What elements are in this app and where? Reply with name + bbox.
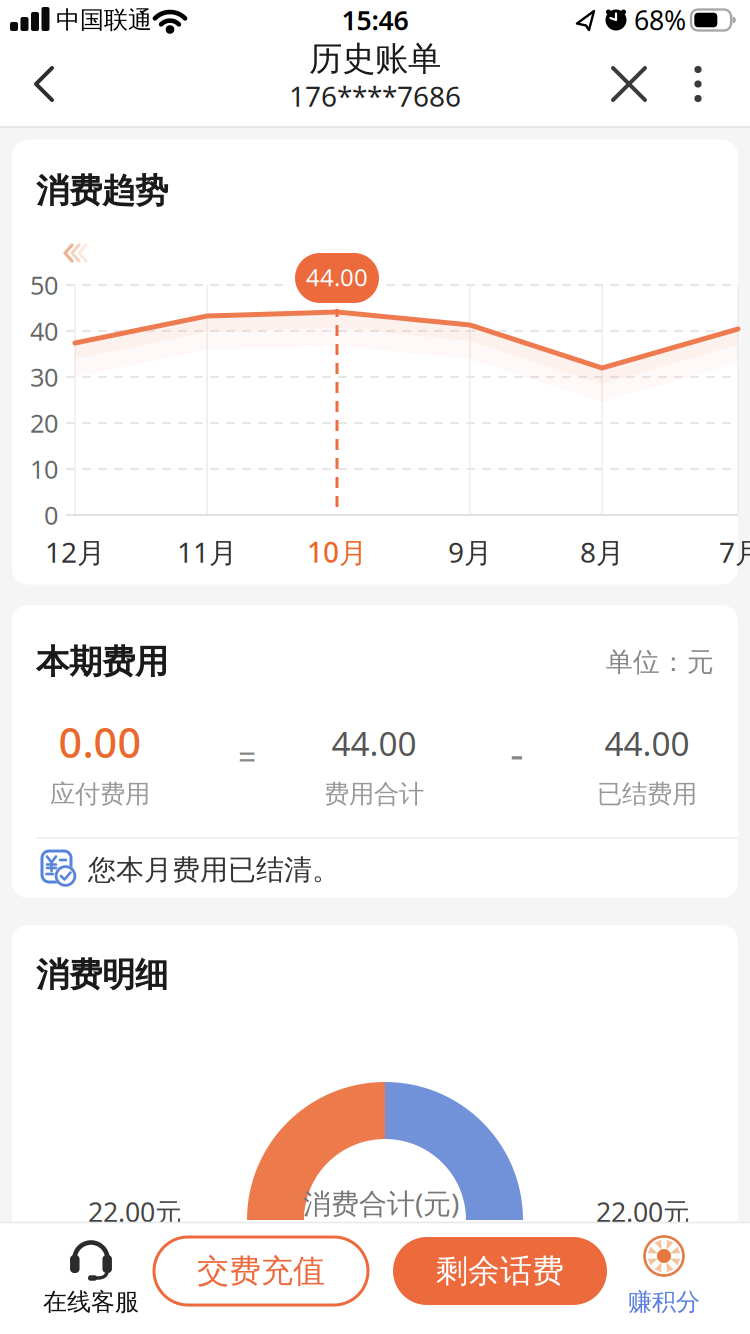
staticText: 9月 xyxy=(448,533,492,571)
staticText: 消费明细 xyxy=(36,954,168,995)
staticText: 剩余话费 xyxy=(436,1251,564,1291)
button[interactable]: 剩余话费 xyxy=(393,1237,607,1305)
staticText: 44.00 xyxy=(604,721,689,765)
staticText: 176****7686 xyxy=(289,77,461,115)
staticText: 赚积分 xyxy=(628,1287,700,1317)
staticText: 您本月费用已结清。 xyxy=(88,853,340,887)
staticText: 68% xyxy=(634,2,686,38)
button[interactable]: 在线客服 xyxy=(31,1222,151,1322)
staticText: 单位：元 xyxy=(606,646,714,678)
staticText: 50 xyxy=(30,268,58,302)
staticText: 消费合计(元) xyxy=(303,1184,459,1222)
staticText: 15:46 xyxy=(341,2,408,38)
staticText: 22.00元 xyxy=(596,1194,690,1230)
staticText: 应付费用 xyxy=(50,778,150,809)
staticText: 20 xyxy=(30,406,58,440)
staticText: 0 xyxy=(44,498,58,532)
staticText: - xyxy=(510,725,524,781)
staticText: 消费趋势 xyxy=(36,170,168,211)
staticText: 历史账单 xyxy=(309,38,441,79)
button[interactable]: More xyxy=(668,48,728,120)
button[interactable]: Close xyxy=(593,48,665,120)
staticText: = xyxy=(238,735,256,777)
staticText: 交费充值 xyxy=(197,1251,325,1291)
staticText: 30 xyxy=(30,360,58,394)
staticText: 22.00元 xyxy=(88,1194,182,1230)
staticText: 40 xyxy=(30,314,58,348)
staticText: 7月 xyxy=(719,533,750,571)
staticText: 费用合计 xyxy=(324,778,424,809)
button[interactable]: Back xyxy=(2,44,82,124)
staticText: 44.00 xyxy=(331,721,416,765)
staticText: 已结费用 xyxy=(597,778,697,809)
staticText: 10 xyxy=(30,452,58,486)
staticText: 10月 xyxy=(307,533,367,571)
staticText: 8月 xyxy=(580,533,624,571)
staticText: 0.00 xyxy=(58,715,141,769)
staticText: 在线客服 xyxy=(43,1287,139,1317)
button[interactable]: 交费充值 xyxy=(154,1237,368,1305)
button[interactable]: 赚积分 xyxy=(614,1222,714,1322)
staticText: 本期费用 xyxy=(36,641,168,682)
staticText: 11月 xyxy=(177,533,237,571)
staticText: 中国联通 xyxy=(56,5,152,35)
button[interactable]: 10月 xyxy=(287,524,387,580)
staticText: 12月 xyxy=(45,533,105,571)
staticText: 44.00 xyxy=(306,261,368,293)
